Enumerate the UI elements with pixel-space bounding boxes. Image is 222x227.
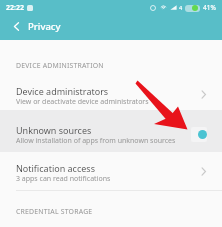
staticText: View or deactivate device administrators: [16, 97, 149, 107]
staticText: 41%: [203, 3, 216, 12]
staticText: Notification access: [16, 162, 95, 174]
button[interactable]: [0, 76, 222, 110]
button[interactable]: Open Device administrators: [196, 87, 210, 101]
staticText: DEVICE ADMINISTRATION: [16, 61, 104, 70]
staticText: CREDENTIAL STORAGE: [16, 207, 93, 216]
staticText: Device administrators: [16, 85, 109, 97]
staticText: 4: [179, 4, 183, 11]
staticText: Allow installation of apps from unknown …: [16, 136, 176, 146]
button[interactable]: [0, 110, 222, 152]
staticText: 3 apps can read notifications: [16, 174, 111, 184]
button[interactable]: Back: [6, 16, 26, 36]
staticText: Unknown sources: [16, 124, 92, 136]
button[interactable]: Open Notification access: [196, 164, 210, 178]
staticText: 22:22: [6, 3, 24, 13]
button[interactable]: [0, 153, 222, 190]
button[interactable]: Toggle unknown sources: [191, 127, 207, 142]
staticText: Privacy: [28, 20, 61, 33]
